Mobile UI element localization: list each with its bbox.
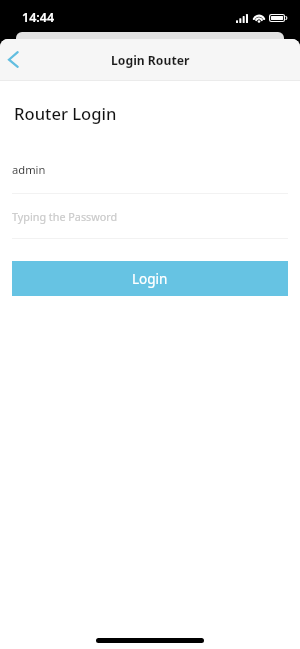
staticText: Router Login: [14, 102, 117, 125]
staticText: Login Router: [111, 52, 190, 69]
button[interactable]: Login: [12, 261, 288, 296]
staticText: Typing the Password: [12, 209, 118, 224]
staticText: 14:44: [22, 9, 55, 26]
button[interactable]: Typing the Password: [12, 194, 288, 239]
button[interactable]: Back: [0, 39, 34, 81]
staticText: admin: [12, 162, 46, 177]
button[interactable]: admin: [12, 152, 288, 194]
staticText: Login: [132, 270, 168, 288]
